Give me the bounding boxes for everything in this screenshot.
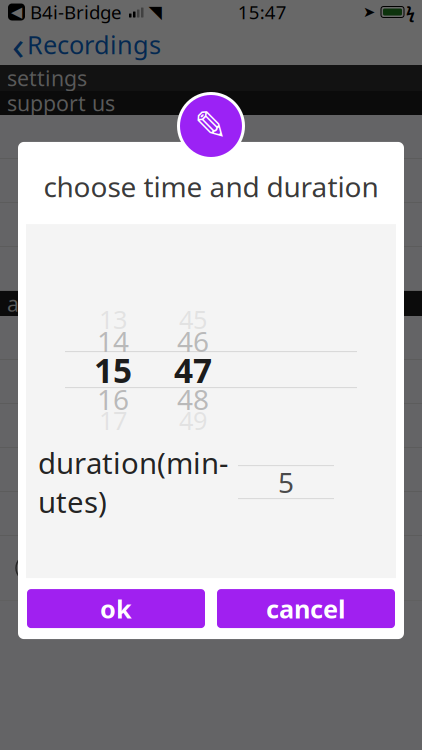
staticText: 45 [179, 302, 207, 336]
staticText: ϟ [406, 1, 415, 23]
staticText: 15 [94, 348, 132, 392]
staticText: duration(minutes) [38, 443, 228, 521]
staticText: B4i-Bridge [30, 0, 122, 24]
staticText: 48 [177, 380, 209, 418]
staticText: ‹ [12, 18, 24, 71]
staticText: ◀ [11, 4, 22, 20]
staticText: 5 [278, 463, 294, 501]
button[interactable]: go to next recording [0, 536, 422, 600]
button[interactable]: ‹ [0, 13, 161, 76]
staticText: 15:47 [238, 0, 287, 24]
staticText: alerts [7, 289, 64, 318]
staticText: 14 [97, 322, 129, 360]
staticText: cancel [266, 592, 346, 625]
button[interactable]: cancel [217, 589, 395, 628]
button[interactable]: ok [27, 589, 205, 628]
staticText: Recordings [27, 28, 161, 61]
staticText: go to next recording [54, 551, 298, 585]
staticText: ✎ [194, 103, 228, 149]
staticText: 13 [99, 302, 127, 336]
staticText: 47 [174, 348, 212, 392]
staticText: 16 [97, 380, 129, 418]
staticText: ◥ [148, 2, 161, 22]
staticText: ok [100, 592, 132, 625]
staticText: ➤ [363, 4, 375, 20]
staticText: support us [7, 89, 115, 117]
staticText: 17 [99, 403, 127, 437]
staticText: 46 [177, 322, 209, 360]
staticText: settings [7, 64, 87, 92]
staticText: choose time and duration [43, 168, 378, 205]
staticText: 49 [179, 403, 207, 437]
